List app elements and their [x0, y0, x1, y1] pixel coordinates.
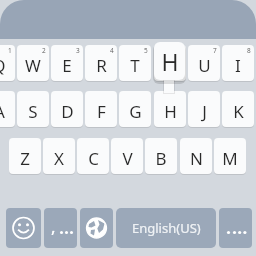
staticText: G — [129, 100, 142, 123]
button[interactable]: V — [111, 138, 143, 174]
button[interactable]: Change language — [80, 208, 113, 248]
button[interactable]: X — [43, 138, 75, 174]
button[interactable]: Comma — [44, 208, 77, 248]
staticText: F — [97, 100, 106, 123]
staticText: C — [88, 147, 99, 170]
staticText: S — [28, 100, 38, 123]
button[interactable]: E — [51, 45, 83, 81]
button[interactable]: T — [119, 45, 151, 81]
staticText: 2 — [42, 46, 46, 55]
button[interactable]: K — [222, 91, 254, 127]
staticText: Y — [165, 54, 175, 77]
staticText: J — [202, 100, 207, 123]
staticText: D — [61, 100, 74, 123]
button[interactable]: H — [154, 42, 185, 80]
button[interactable]: J — [188, 91, 220, 127]
button[interactable]: F — [85, 91, 117, 127]
staticText: T — [130, 54, 140, 77]
button[interactable]: M — [214, 138, 246, 174]
staticText: M — [222, 147, 238, 170]
button[interactable]: A — [0, 91, 15, 127]
button[interactable]: B — [145, 138, 177, 174]
button[interactable]: Y — [154, 45, 186, 81]
button[interactable]: S — [17, 91, 49, 127]
button[interactable]: R — [85, 45, 117, 81]
staticText: 1 — [8, 46, 12, 55]
button[interactable]: I — [222, 45, 254, 81]
staticText: W — [25, 54, 41, 77]
button[interactable]: C — [77, 138, 109, 174]
button[interactable]: Z — [9, 138, 41, 174]
button[interactable]: Q — [0, 45, 15, 81]
staticText: 4 — [110, 46, 114, 55]
staticText: A — [0, 100, 5, 123]
staticText: B — [155, 147, 167, 170]
staticText: Q — [0, 54, 6, 77]
staticText: H — [164, 100, 177, 123]
staticText: , — [51, 215, 56, 238]
button[interactable]: H — [154, 91, 186, 127]
button[interactable]: N — [180, 138, 212, 174]
staticText: E — [62, 54, 72, 77]
staticText: I — [235, 54, 241, 77]
staticText: U — [198, 54, 211, 77]
staticText: K — [233, 100, 244, 123]
staticText: Z — [20, 147, 30, 170]
staticText: R — [96, 54, 107, 77]
staticText: English(US) — [132, 219, 201, 237]
staticText: 3 — [76, 46, 80, 55]
staticText: 8 — [247, 46, 251, 55]
staticText: 5 — [144, 46, 148, 55]
button[interactable]: G — [119, 91, 151, 127]
staticText: N — [190, 147, 203, 170]
button[interactable]: English(US) — [116, 208, 216, 248]
button[interactable]: U — [188, 45, 220, 81]
staticText: X — [54, 147, 64, 170]
button[interactable]: Emoji — [6, 208, 41, 248]
staticText: H — [161, 46, 179, 77]
staticText: V — [122, 147, 133, 170]
staticText: 7 — [213, 46, 217, 55]
button[interactable]: W — [17, 45, 49, 81]
button[interactable]: D — [51, 91, 83, 127]
button[interactable]: Period — [219, 208, 252, 248]
